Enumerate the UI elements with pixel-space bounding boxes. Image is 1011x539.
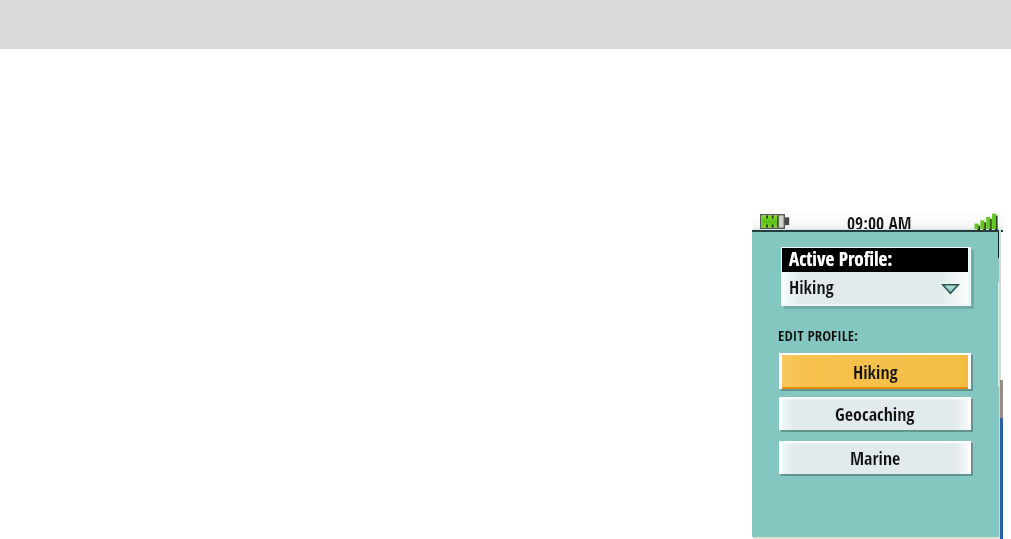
staticText: Hiking — [853, 360, 898, 385]
staticText: Marine — [850, 446, 901, 471]
staticText: Active Profile: — [789, 246, 893, 270]
staticText: EDIT PROFILE: — [778, 325, 859, 345]
button[interactable]: Marine — [782, 443, 968, 474]
button[interactable]: Hiking — [782, 355, 968, 389]
staticText: Hiking — [789, 275, 834, 300]
staticText: Geocaching — [835, 402, 915, 427]
other: Battery level — [760, 214, 789, 229]
staticText: 09:00 AM — [847, 211, 912, 229]
button[interactable]: Hiking — [782, 272, 968, 304]
other: Signal strength — [973, 211, 999, 229]
button[interactable]: Geocaching — [782, 399, 968, 430]
